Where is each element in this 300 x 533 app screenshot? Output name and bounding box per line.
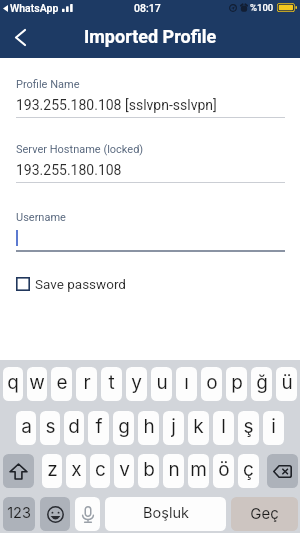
staticText: 123 (7, 504, 31, 522)
staticText: z (47, 458, 58, 481)
staticText: Server Hostname (locked) (16, 143, 144, 156)
button[interactable]: Shift (3, 454, 34, 488)
staticText: x (71, 458, 82, 481)
staticText: 193.255.180.108 [sslvpn-sslvpn] (16, 97, 217, 113)
button[interactable]: i (263, 411, 284, 445)
button[interactable]: 123 (3, 497, 35, 531)
button[interactable]: w (27, 367, 47, 401)
staticText: Profile Name (16, 78, 80, 91)
staticText: k (193, 415, 204, 438)
staticText: Geç (250, 504, 279, 522)
staticText: g (118, 415, 130, 438)
button[interactable]: ö (213, 454, 234, 488)
staticText: u (156, 371, 168, 394)
staticText: Imported Profile (84, 26, 217, 47)
staticText: b (143, 458, 155, 481)
staticText: w (29, 371, 45, 394)
button[interactable]: ğ (251, 367, 272, 401)
button[interactable]: q (3, 367, 23, 401)
button[interactable]: d (64, 411, 84, 445)
staticText: ş (243, 415, 254, 438)
staticText: ö (218, 458, 230, 481)
button[interactable]: v (114, 454, 134, 488)
staticText: e (56, 371, 68, 394)
staticText: h (143, 415, 155, 438)
staticText: %100 (250, 2, 274, 13)
button[interactable]: Backspace (267, 454, 298, 488)
button[interactable]: Geç (231, 497, 298, 531)
button[interactable]: Back (4, 21, 36, 53)
staticText: o (206, 371, 218, 394)
staticText: c (95, 458, 106, 481)
staticText: m (190, 458, 207, 481)
button[interactable]: ü (276, 367, 297, 401)
staticText: ı (184, 371, 189, 394)
staticText: ğ (256, 371, 268, 394)
staticText: p (231, 371, 243, 394)
button[interactable]: u (151, 367, 172, 401)
button[interactable]: k (188, 411, 209, 445)
button[interactable]: h (138, 411, 159, 445)
button[interactable]: g (113, 411, 134, 445)
staticText: q (7, 371, 19, 394)
staticText: 193.255.180.108 (16, 162, 122, 178)
staticText: a (21, 415, 32, 438)
button[interactable]: m (188, 454, 209, 488)
button[interactable]: f (88, 411, 109, 445)
staticText: Username (16, 211, 66, 224)
staticText: i (271, 415, 276, 438)
staticText: f (95, 415, 103, 438)
button[interactable]: ı (176, 367, 197, 401)
button[interactable]: c (90, 454, 110, 488)
button[interactable]: Emoji (40, 497, 70, 531)
staticText: l (221, 415, 226, 438)
staticText: ü (281, 371, 293, 394)
staticText: ç (243, 458, 254, 481)
staticText: y (131, 371, 142, 394)
button[interactable]: y (126, 367, 147, 401)
button[interactable]: Boşluk (105, 497, 226, 531)
staticText: t (108, 371, 115, 394)
staticText: s (45, 415, 56, 438)
button[interactable]: o (201, 367, 222, 401)
staticText: d (68, 415, 80, 438)
staticText: Save password (35, 276, 126, 292)
button[interactable]: ç (238, 454, 259, 488)
button[interactable]: b (138, 454, 159, 488)
button[interactable]: e (51, 367, 72, 401)
button[interactable]: z (42, 454, 62, 488)
staticText: n (168, 458, 180, 481)
button[interactable]: r (76, 367, 97, 401)
staticText: r (83, 371, 91, 394)
staticText: WhatsApp (10, 2, 59, 14)
staticText: j (171, 415, 176, 438)
staticText: Boşluk (143, 504, 189, 522)
button[interactable]: Dictation (75, 497, 100, 531)
button[interactable]: a (16, 411, 36, 445)
button[interactable]: j (163, 411, 184, 445)
staticText: 08:17 (134, 2, 161, 14)
button[interactable]: n (163, 454, 184, 488)
button[interactable]: ş (238, 411, 259, 445)
button[interactable]: t (101, 367, 122, 401)
button[interactable]: p (226, 367, 247, 401)
staticText: v (119, 458, 130, 481)
button[interactable]: s (40, 411, 60, 445)
button[interactable]: l (213, 411, 234, 445)
button[interactable]: Save password (16, 276, 126, 292)
button[interactable]: x (66, 454, 86, 488)
